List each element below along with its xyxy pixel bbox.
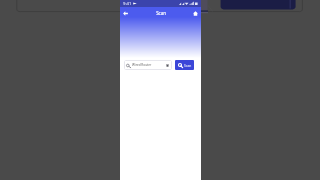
button[interactable]: Scan [175,60,194,70]
staticText: Scan [156,10,166,16]
button[interactable]: Clear [165,63,170,68]
button[interactable]: Back [121,9,129,17]
button[interactable]: Home [191,9,199,17]
staticText: Wired Router [132,63,152,67]
button[interactable]: Wired Router [124,60,172,70]
staticText: Scan [184,63,192,67]
staticText: 9:41 [123,1,132,7]
